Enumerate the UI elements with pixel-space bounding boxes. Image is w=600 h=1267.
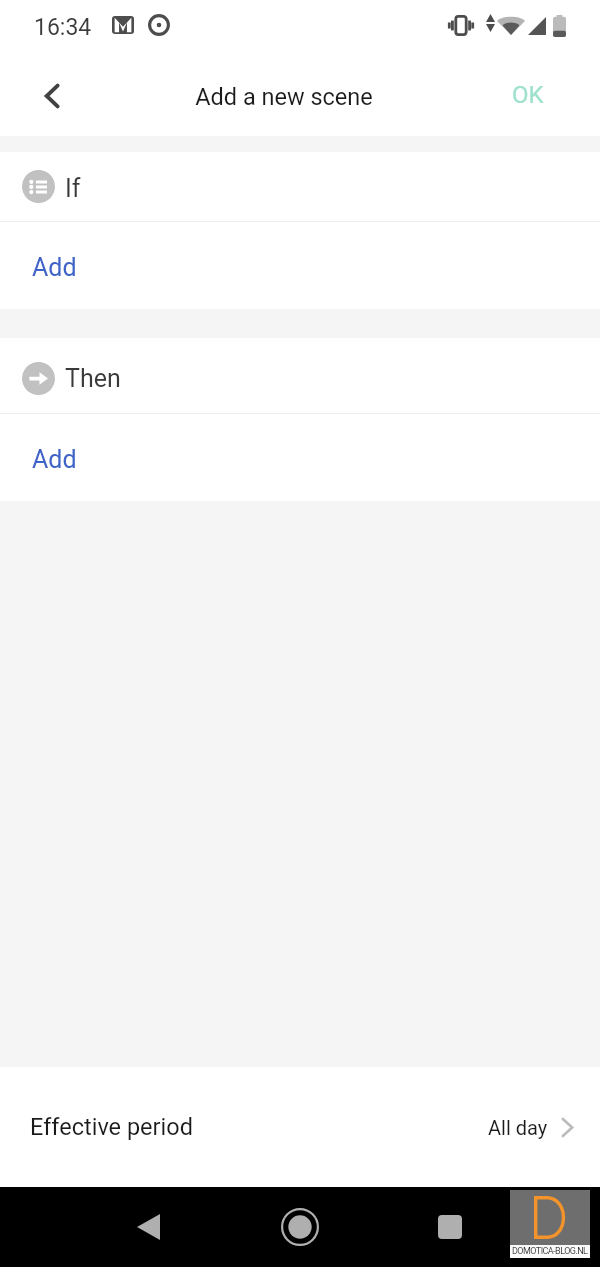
staticText: If — [65, 174, 81, 203]
button[interactable]: Home — [270, 1197, 330, 1257]
staticText: Add — [32, 445, 77, 474]
staticText: Then — [65, 364, 121, 393]
button[interactable]: Add — [0, 414, 600, 501]
staticText: Add a new scene — [195, 83, 373, 111]
staticText: 16:34 — [34, 14, 92, 41]
staticText: Effective period — [30, 1113, 193, 1141]
button[interactable]: Back — [24, 68, 80, 124]
button[interactable]: Recent apps — [420, 1197, 480, 1257]
staticText: OK — [512, 81, 544, 109]
staticText: DOMOTICA-BLOG.NL — [512, 1246, 588, 1257]
staticText: Add — [32, 253, 77, 282]
button[interactable]: Then — [0, 338, 600, 413]
button[interactable]: Back — [118, 1197, 178, 1257]
button[interactable]: Effective period — [0, 1067, 600, 1187]
button[interactable]: OK — [498, 72, 558, 120]
button[interactable]: Add — [0, 222, 600, 309]
staticText: All day — [488, 1116, 548, 1139]
button[interactable]: If — [0, 152, 600, 221]
